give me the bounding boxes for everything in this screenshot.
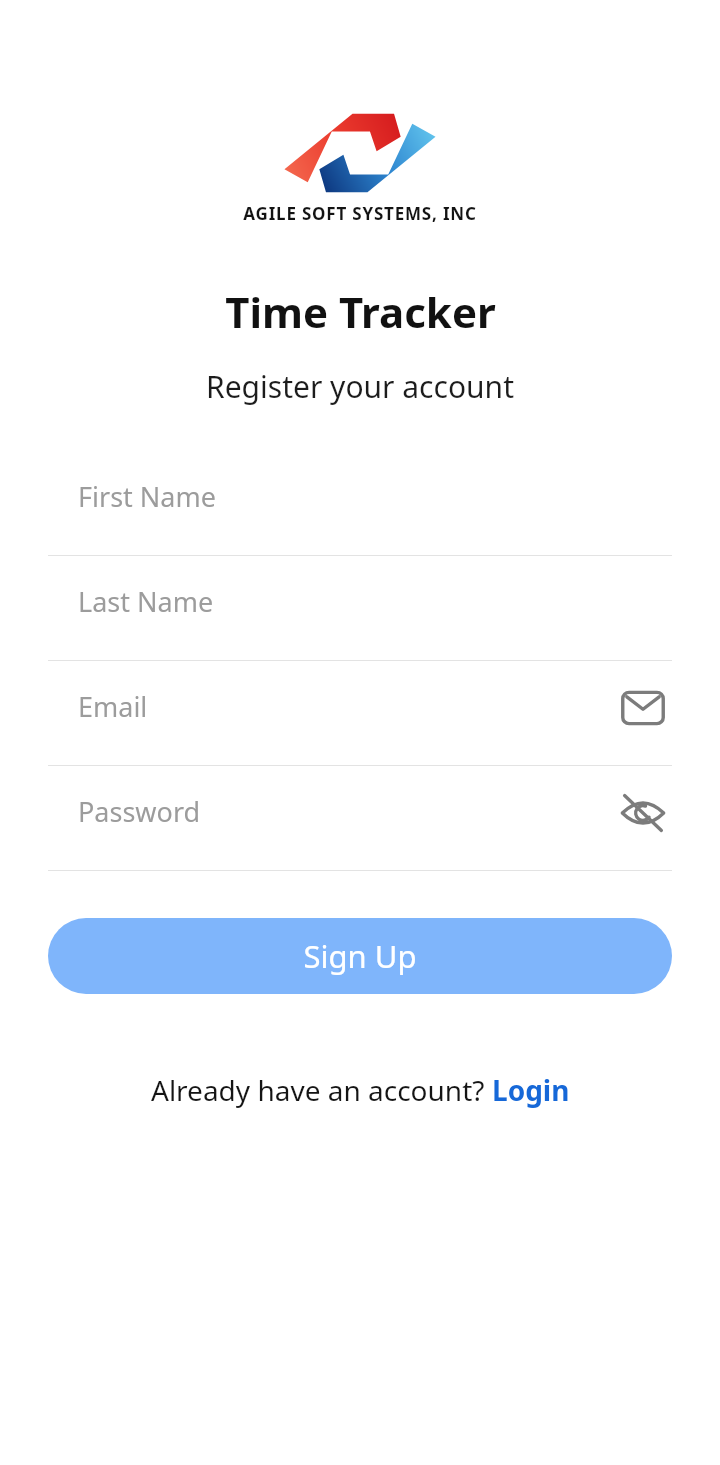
staticText: Email [78, 688, 148, 725]
staticText: Register your account [206, 366, 514, 407]
button[interactable]: Login [492, 1071, 570, 1109]
button[interactable]: Email [48, 661, 672, 766]
button[interactable]: Password [48, 766, 672, 871]
button[interactable]: Last Name [48, 556, 672, 661]
staticText: Sign Up [303, 935, 417, 977]
staticText: AGILE SOFT SYSTEMS, INC [243, 202, 477, 225]
staticText: Password [78, 793, 201, 830]
button[interactable]: Email [614, 679, 672, 737]
button[interactable]: First Name [48, 451, 672, 556]
button[interactable]: Sign Up [48, 918, 672, 994]
staticText: Time Tracker [225, 283, 496, 340]
staticText: Login [492, 1071, 570, 1109]
button[interactable]: Show password [614, 784, 672, 842]
staticText: Last Name [78, 583, 214, 620]
staticText: First Name [78, 478, 216, 515]
staticText: Already have an account? [151, 1071, 492, 1109]
